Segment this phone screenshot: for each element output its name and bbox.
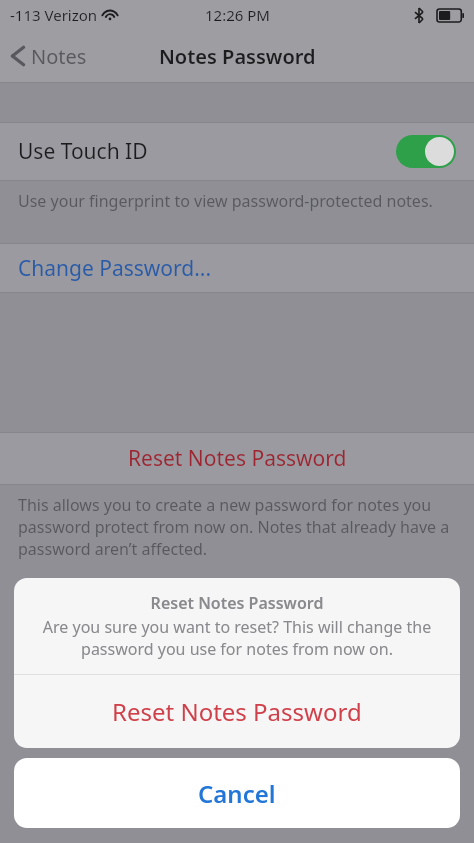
- button[interactable]: Use Touch ID: [0, 123, 474, 180]
- button[interactable]: Cancel: [14, 758, 460, 828]
- staticText: Are you sure you want to reset? This wil…: [30, 616, 444, 660]
- other: Use Touch ID toggle: [396, 135, 456, 168]
- staticText: 12:26 PM: [205, 5, 270, 25]
- button[interactable]: Change Password...: [0, 244, 474, 292]
- button[interactable]: Reset Notes Password: [14, 675, 460, 748]
- staticText: Use your fingerprint to view password-pr…: [18, 190, 433, 212]
- staticText: Notes Password: [159, 43, 316, 70]
- staticText: Cancel: [198, 777, 276, 810]
- staticText: Use Touch ID: [18, 137, 148, 166]
- button[interactable]: Notes: [0, 30, 99, 82]
- staticText: This allows you to create a new password…: [18, 494, 460, 560]
- staticText: -113 Verizon: [10, 5, 98, 25]
- staticText: Change Password...: [18, 254, 212, 283]
- staticText: Reset Notes Password: [30, 592, 444, 614]
- button[interactable]: Reset Notes Password: [0, 433, 474, 484]
- staticText: Notes: [31, 43, 87, 70]
- staticText: Reset Notes Password: [128, 444, 347, 473]
- staticText: Reset Notes Password: [112, 695, 362, 728]
